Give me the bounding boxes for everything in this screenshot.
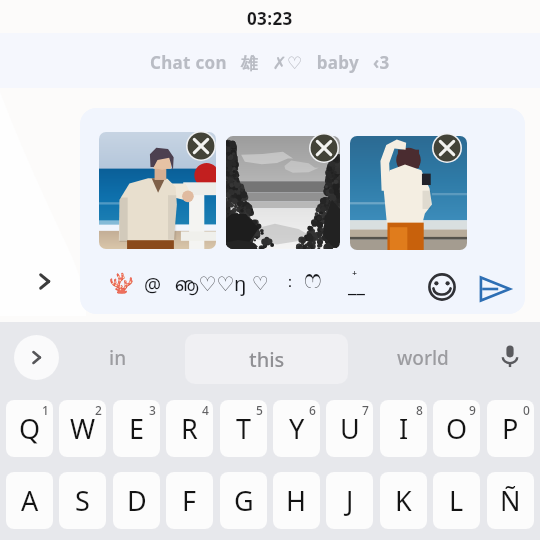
button[interactable]: world [378, 335, 468, 381]
button[interactable]: Voice input [489, 335, 531, 377]
button[interactable]: Chat con 雄 ✗♡ baby ‹3 [0, 40, 540, 84]
staticText: ： [282, 272, 298, 292]
button[interactable]: Remove image [431, 132, 463, 164]
staticText: H [286, 482, 307, 519]
button[interactable]: Emoji [425, 270, 458, 303]
button[interactable]: P [487, 400, 534, 457]
button[interactable]: D [113, 472, 160, 529]
button[interactable]: F [166, 472, 213, 529]
staticText: in [109, 345, 127, 371]
button[interactable]: G [220, 472, 267, 529]
button[interactable]: A [6, 472, 53, 529]
staticText: ෆ [304, 267, 322, 293]
staticText: 1 [42, 402, 49, 418]
staticText: W [70, 410, 96, 447]
button[interactable]: Y [273, 400, 320, 457]
button[interactable]: Remove image [185, 130, 217, 162]
staticText: ♡ [252, 272, 270, 294]
staticText: Y [289, 410, 305, 447]
button[interactable]: S [59, 472, 106, 529]
button[interactable]: W [59, 400, 106, 457]
staticText: Chat con 雄 ✗♡ baby ‹3 [150, 51, 390, 74]
button[interactable]: Ñ [487, 472, 534, 529]
staticText: this [249, 346, 285, 373]
staticText: __ [348, 272, 365, 298]
staticText: F [182, 482, 197, 519]
staticText: S [75, 482, 90, 519]
staticText: 3 [149, 402, 156, 418]
staticText: 9 [469, 402, 476, 418]
staticText: 🪸 [109, 271, 134, 294]
button[interactable]: Q [6, 400, 53, 457]
staticText: P [502, 410, 519, 447]
button[interactable]: Attached photo 1 [99, 132, 216, 249]
button[interactable]: 🪸 [100, 262, 410, 304]
staticText: L [449, 482, 464, 519]
button[interactable]: J [326, 472, 373, 529]
staticText: A [21, 482, 39, 519]
staticText: T [236, 410, 252, 447]
button[interactable]: More suggestions [14, 335, 59, 380]
button[interactable]: H [273, 472, 320, 529]
staticText: 7 [362, 402, 369, 418]
button[interactable]: O [433, 400, 480, 457]
button[interactable]: R [166, 400, 213, 457]
staticText: world [397, 345, 449, 371]
button[interactable]: Send [475, 269, 515, 309]
staticText: 8 [416, 402, 423, 418]
staticText: ⁺ [352, 266, 358, 286]
staticText: O [446, 410, 468, 447]
staticText: G [234, 482, 254, 519]
staticText: I [399, 410, 409, 447]
staticText: D [127, 482, 147, 519]
staticText: U [340, 410, 360, 447]
staticText: E [129, 410, 145, 447]
button[interactable]: Expand options [26, 263, 62, 299]
button[interactable]: I [380, 400, 427, 457]
button[interactable]: U [326, 400, 373, 457]
button[interactable]: Attached photo 3 [350, 136, 467, 250]
staticText: J [346, 482, 354, 519]
staticText: Ñ [500, 482, 521, 519]
button[interactable]: Remove image [308, 132, 340, 164]
staticText: Q [19, 410, 41, 447]
staticText: K [395, 482, 412, 519]
button[interactable]: in [78, 335, 158, 381]
button[interactable]: K [380, 472, 427, 529]
button[interactable]: L [433, 472, 480, 529]
staticText: 2 [95, 402, 102, 418]
staticText: ൡ♡♡ŋ [174, 270, 247, 297]
staticText: 4 [202, 402, 209, 418]
staticText: @ [144, 272, 162, 298]
staticText: 5 [256, 402, 263, 418]
staticText: 6 [309, 402, 316, 418]
staticText: 0 [523, 402, 530, 418]
staticText: R [181, 410, 198, 447]
button[interactable]: T [220, 400, 267, 457]
button[interactable]: Attached photo 2 [226, 136, 340, 249]
button[interactable]: E [113, 400, 160, 457]
staticText: 03:23 [247, 7, 293, 30]
button[interactable]: this [185, 334, 348, 384]
